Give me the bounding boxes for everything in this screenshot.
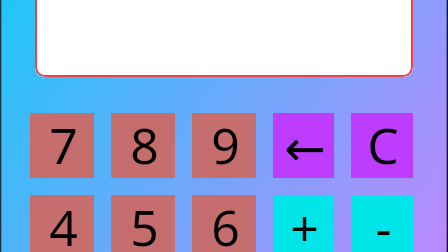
- staticText: -: [375, 193, 392, 252]
- button[interactable]: [35, 0, 413, 77]
- button[interactable]: 5: [111, 195, 175, 252]
- button[interactable]: -: [351, 195, 413, 252]
- button[interactable]: +: [273, 195, 334, 252]
- staticText: C: [367, 111, 399, 176]
- button[interactable]: Backspace: [273, 113, 334, 178]
- staticText: 8: [130, 111, 159, 176]
- button[interactable]: 7: [30, 113, 94, 178]
- button[interactable]: 8: [111, 113, 175, 178]
- button[interactable]: 6: [192, 195, 256, 252]
- staticText: ←: [284, 120, 326, 178]
- staticText: 9: [211, 111, 240, 176]
- staticText: 6: [211, 193, 240, 252]
- button[interactable]: C: [351, 113, 413, 178]
- button[interactable]: 9: [192, 113, 256, 178]
- staticText: +: [290, 193, 319, 252]
- button[interactable]: 4: [30, 195, 94, 252]
- staticText: 7: [49, 111, 78, 176]
- staticText: 5: [130, 193, 159, 252]
- staticText: 4: [49, 193, 78, 252]
